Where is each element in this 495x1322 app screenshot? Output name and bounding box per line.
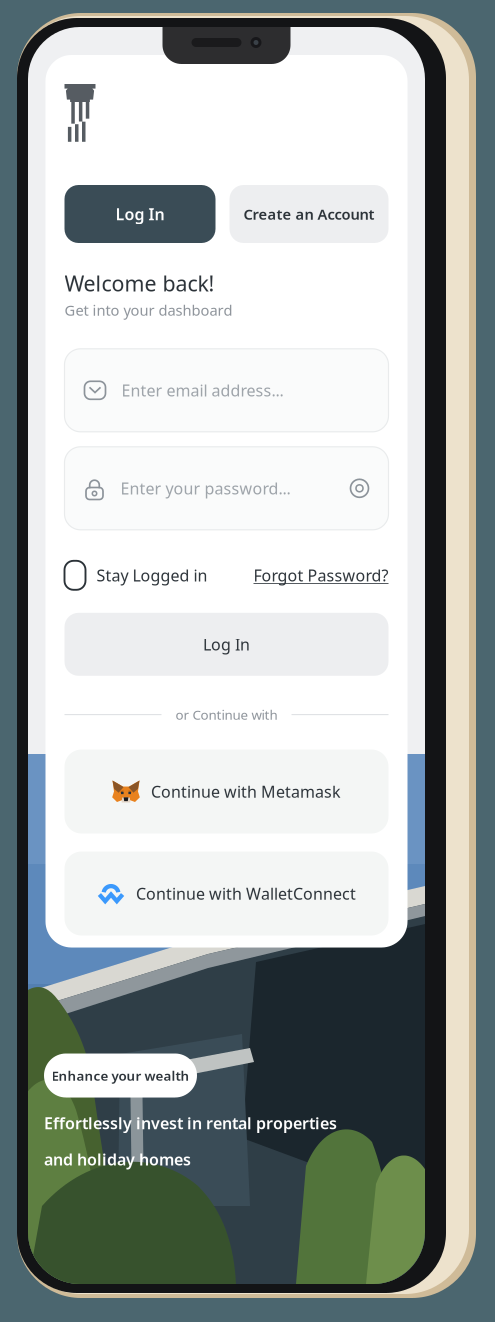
staticText: Create an Account [243,204,374,224]
staticText: Log In [203,634,250,655]
staticText: Enhance your wealth [51,1067,189,1084]
button[interactable]: Continue with Metamask [64,749,388,833]
staticText: Enter email address... [121,380,283,401]
button[interactable]: Stay Logged in [64,561,207,590]
staticText: Continue with WalletConnect [136,883,356,904]
button[interactable]: Forgot Password? [253,565,388,586]
button[interactable]: Log In [64,613,388,676]
button[interactable]: Continue with WalletConnect [64,851,388,935]
staticText: Enter your password... [120,478,290,499]
staticText: Log In [115,203,164,225]
staticText: or Continue with [175,706,277,723]
staticText: Stay Logged in [96,565,207,586]
button[interactable]: Log In [64,185,215,243]
button[interactable]: Create an Account [229,185,388,243]
button[interactable]: Show password [349,478,369,498]
staticText: Forgot Password? [253,565,388,586]
staticText: Continue with Metamask [151,781,341,802]
staticText: and holiday homes [44,1149,191,1170]
staticText: Welcome back! [64,269,214,297]
staticText: Get into your dashboard [64,300,232,320]
staticText: Effortlessly invest in rental properties [44,1112,337,1134]
